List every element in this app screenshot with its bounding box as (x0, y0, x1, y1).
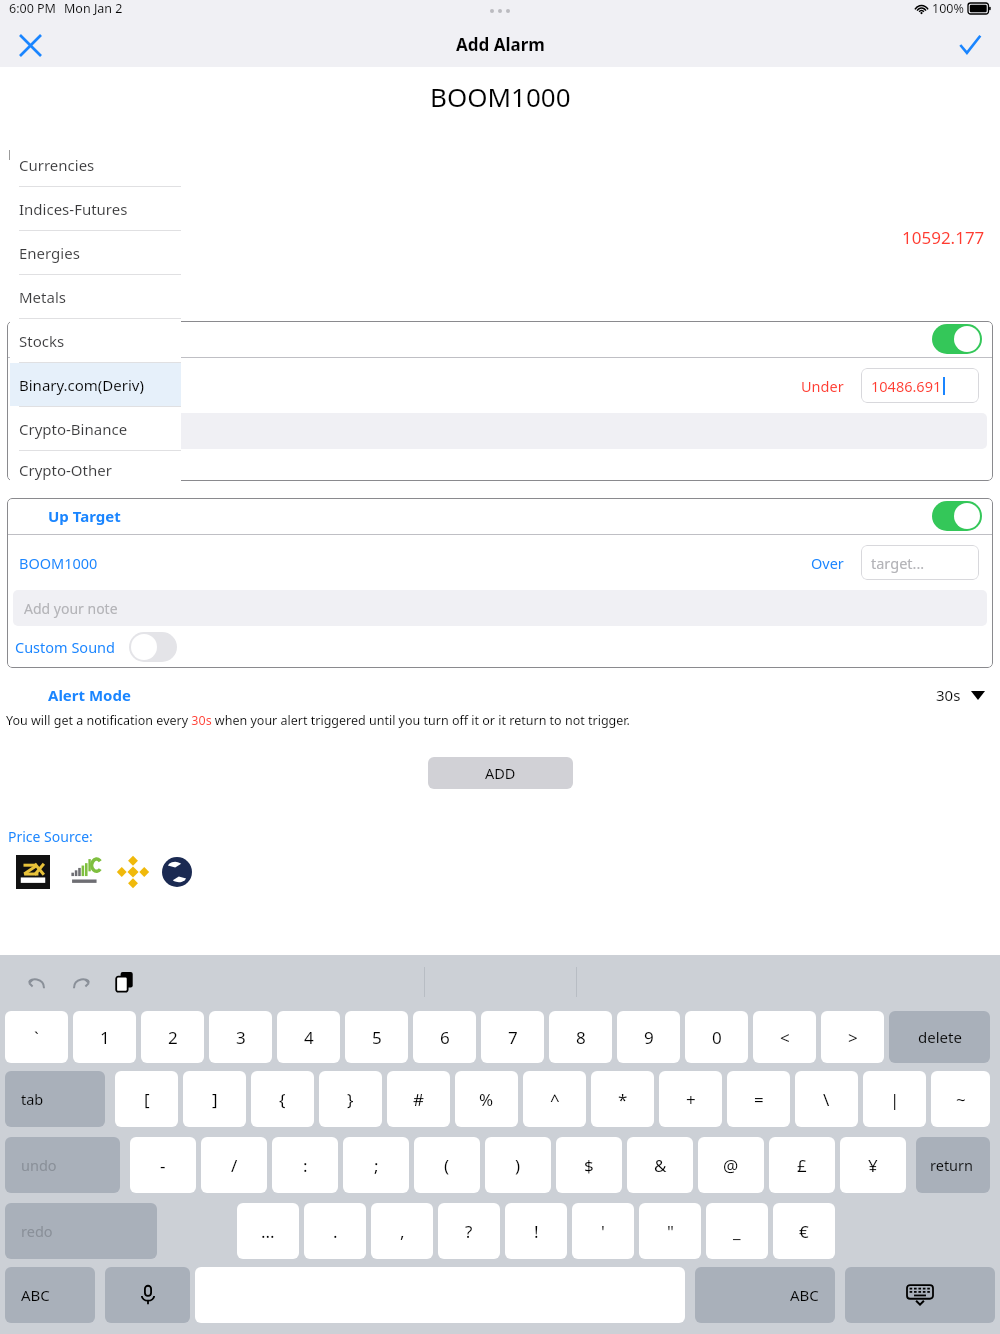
staticText: @ (723, 1154, 739, 1177)
button[interactable]: = (727, 1071, 790, 1127)
button[interactable]: > (821, 1011, 884, 1063)
button[interactable]: Confirm (950, 25, 990, 65)
staticText: Energies (19, 243, 80, 263)
button[interactable]: ABC (695, 1267, 835, 1323)
button[interactable]: ) (485, 1137, 551, 1193)
button[interactable]: ] (183, 1071, 246, 1127)
staticText: Binary.com(Deriv) (19, 375, 144, 395)
button[interactable]: 9 (617, 1011, 680, 1063)
button[interactable]: ( (414, 1137, 480, 1193)
staticText: Add Alarm (456, 33, 545, 56)
button[interactable]: ADD (428, 757, 573, 789)
button[interactable]: [ (115, 1071, 178, 1127)
staticText: * (618, 1088, 628, 1111)
button[interactable]: Toggle on (932, 324, 982, 354)
button[interactable]: 8 (549, 1011, 612, 1063)
button[interactable]: return (916, 1137, 990, 1193)
staticText: ; (374, 1154, 379, 1177)
button[interactable]: ? (438, 1203, 500, 1259)
button[interactable]: & (627, 1137, 693, 1193)
button[interactable]: Toggle on (932, 501, 982, 531)
staticText: Add your note (24, 422, 118, 441)
button[interactable]: Metals (10, 275, 181, 318)
button[interactable]: 0 (685, 1011, 748, 1063)
button[interactable]: _ (706, 1203, 768, 1259)
button[interactable]: Alert Mode (48, 679, 985, 711)
button[interactable]: 6 (413, 1011, 476, 1063)
button[interactable]: 1 (73, 1011, 136, 1063)
button[interactable]: Indices-Futures (10, 187, 181, 230)
button[interactable]: 5 (345, 1011, 408, 1063)
button[interactable]: \ (795, 1071, 858, 1127)
button[interactable]: " (639, 1203, 701, 1259)
button[interactable]: 3 (209, 1011, 272, 1063)
staticText: _ (733, 1220, 741, 1243)
button[interactable]: 4 (277, 1011, 340, 1063)
button[interactable]: , (371, 1203, 433, 1259)
button[interactable]: Stocks (10, 319, 181, 362)
button[interactable]: $ (556, 1137, 622, 1193)
button[interactable]: Paste (108, 965, 142, 999)
button[interactable]: Binary.com(Deriv) (8, 144, 164, 164)
button[interactable]: Add your note (13, 590, 987, 626)
button[interactable]: | (863, 1071, 926, 1127)
button[interactable]: + (659, 1071, 722, 1127)
staticText: Add your note (24, 599, 118, 618)
button[interactable]: tab (5, 1071, 105, 1127)
button[interactable]: Binary.com(Deriv) (10, 363, 181, 406)
button[interactable]: ABC (5, 1267, 95, 1323)
button[interactable]: € (773, 1203, 835, 1259)
button[interactable]: Crypto-Other (10, 451, 181, 488)
button[interactable]: Dictation (105, 1267, 190, 1323)
button[interactable]: £ (769, 1137, 835, 1193)
button[interactable]: redo (5, 1203, 157, 1259)
staticText: Indices-Futures (19, 199, 128, 219)
button[interactable]: @ (698, 1137, 764, 1193)
staticText: tab (21, 1089, 44, 1109)
button[interactable]: ! (505, 1203, 567, 1259)
button[interactable]: * (591, 1071, 654, 1127)
staticText: ADD (485, 763, 516, 783)
button[interactable]: Redo (64, 965, 98, 999)
staticText: > (848, 1026, 858, 1049)
button[interactable]: ... (237, 1203, 299, 1259)
staticText: < (780, 1026, 790, 1049)
button[interactable]: 7 (481, 1011, 544, 1063)
button[interactable]: ~ (931, 1071, 990, 1127)
button[interactable]: 2 (141, 1011, 204, 1063)
button[interactable]: Energies (10, 231, 181, 274)
button[interactable]: Toggle off (129, 632, 177, 662)
button[interactable]: ^ (523, 1071, 586, 1127)
staticText: Price Source: (8, 827, 93, 846)
button[interactable]: 10486.691 (861, 368, 979, 403)
button[interactable]: } (319, 1071, 382, 1127)
button[interactable]: Undo (20, 965, 54, 999)
staticText: : (303, 1154, 308, 1177)
staticText: ! (534, 1220, 539, 1243)
button[interactable]: / (201, 1137, 267, 1193)
staticText: 4 (304, 1026, 314, 1049)
button[interactable]: Currencies (10, 143, 181, 186)
button[interactable]: < (753, 1011, 816, 1063)
button[interactable]: % (455, 1071, 518, 1127)
button[interactable]: ` (5, 1011, 68, 1063)
button[interactable]: - (130, 1137, 196, 1193)
button[interactable]: delete (889, 1011, 990, 1063)
button[interactable]: ¥ (840, 1137, 906, 1193)
button[interactable]: # (387, 1071, 450, 1127)
button[interactable]: target... (861, 545, 979, 580)
button[interactable]: : (272, 1137, 338, 1193)
button[interactable]: undo (5, 1137, 120, 1193)
button[interactable]: ; (343, 1137, 409, 1193)
staticText: % (479, 1088, 494, 1111)
staticText: Crypto-Binance (19, 419, 128, 439)
button[interactable]: { (251, 1071, 314, 1127)
staticText: £ (797, 1154, 807, 1177)
button[interactable]: Hide keyboard (845, 1267, 995, 1323)
button[interactable]: Close (10, 25, 50, 65)
button[interactable]: ' (572, 1203, 634, 1259)
button[interactable]: Add your note (13, 413, 987, 449)
button[interactable]: Crypto-Binance (10, 407, 181, 450)
button[interactable]: . (304, 1203, 366, 1259)
